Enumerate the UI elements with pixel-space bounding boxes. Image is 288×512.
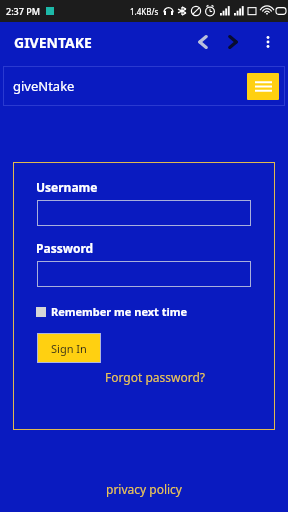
button[interactable]: [37, 200, 251, 226]
staticText: Forgot password?: [105, 369, 206, 385]
staticText: GIVENTAKE: [14, 33, 92, 52]
button[interactable]: Menu: [247, 73, 279, 100]
staticText: privacy policy: [106, 481, 182, 497]
staticText: 1.4KB/s: [130, 6, 159, 17]
button[interactable]: Sign In: [37, 333, 101, 363]
staticText: Remember me next time: [51, 304, 188, 319]
staticText: giveNtake: [13, 77, 75, 95]
button[interactable]: Forward: [218, 25, 252, 59]
button[interactable]: More options: [252, 26, 284, 58]
button[interactable]: [37, 261, 251, 287]
staticText: Sign In: [51, 341, 87, 356]
button[interactable]: privacy policy: [106, 481, 182, 497]
button[interactable]: Back: [184, 25, 218, 59]
staticText: Username: [36, 179, 98, 195]
button[interactable]: Remember me next time: [36, 304, 188, 319]
staticText: Password: [36, 240, 94, 256]
button[interactable]: Forgot password?: [105, 369, 206, 385]
staticText: 2:37 PM: [6, 5, 40, 17]
